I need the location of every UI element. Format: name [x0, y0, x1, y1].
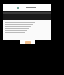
button[interactable]: Action: [25, 41, 31, 44]
